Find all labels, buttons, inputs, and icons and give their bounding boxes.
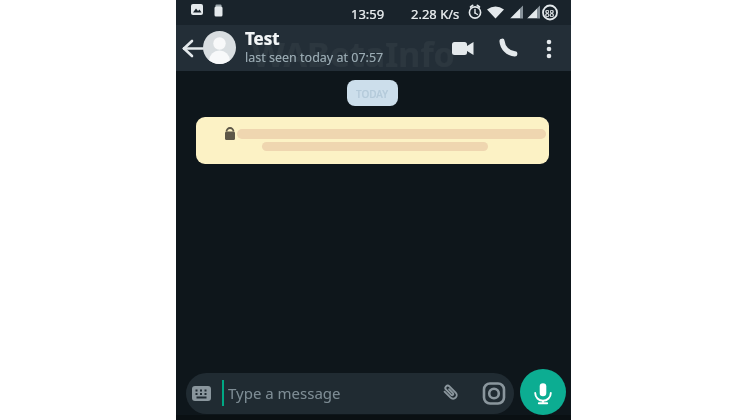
button[interactable]	[520, 369, 566, 415]
button[interactable]	[446, 36, 480, 62]
staticText: last seen today at 07:57	[245, 49, 384, 66]
button[interactable]: Type a message	[186, 373, 514, 414]
staticText: WABetaInfo	[252, 31, 455, 77]
staticText: TODAY	[356, 87, 389, 101]
button[interactable]	[538, 35, 560, 61]
staticText: Type a message	[228, 383, 341, 403]
button[interactable]	[196, 117, 549, 164]
button[interactable]	[494, 35, 524, 61]
button[interactable]	[178, 38, 208, 62]
button[interactable]	[203, 31, 236, 64]
staticText: 13:59	[351, 5, 385, 23]
staticText: Test	[245, 27, 280, 50]
staticText: 2.28 K/s	[411, 5, 460, 23]
staticText: 88	[545, 8, 555, 19]
